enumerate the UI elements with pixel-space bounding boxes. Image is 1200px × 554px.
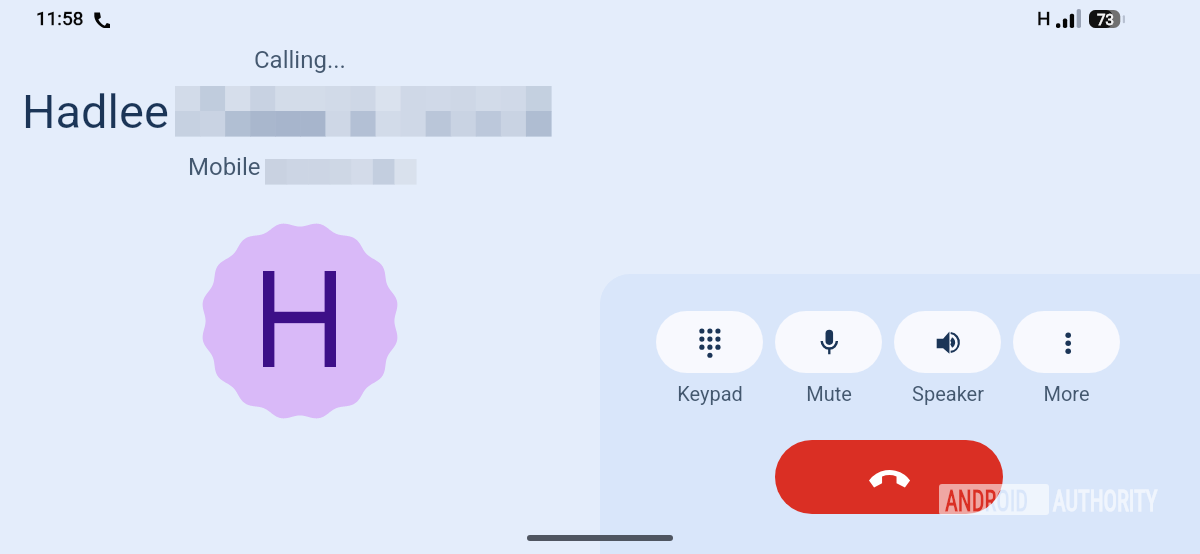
staticText: Speaker bbox=[912, 382, 984, 405]
button[interactable]: More bbox=[1013, 311, 1120, 405]
button[interactable]: Speaker bbox=[894, 311, 1001, 405]
staticText: Mobile bbox=[188, 153, 261, 181]
button[interactable]: End call bbox=[775, 440, 1003, 514]
button[interactable]: Mute bbox=[775, 311, 882, 405]
staticText: Hadlee bbox=[22, 84, 169, 139]
staticText: More bbox=[1043, 382, 1090, 405]
staticText: 73 bbox=[1092, 11, 1119, 29]
staticText: Mute bbox=[806, 382, 852, 405]
staticText: H bbox=[1037, 7, 1051, 29]
staticText: Calling... bbox=[254, 46, 346, 74]
staticText: 11:58 bbox=[36, 7, 84, 29]
button[interactable]: Keypad bbox=[656, 311, 763, 405]
staticText: Keypad bbox=[677, 382, 743, 405]
